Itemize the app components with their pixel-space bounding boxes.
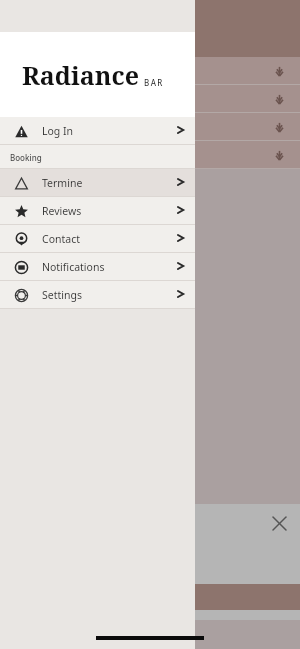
staticText: Contact [42,232,80,246]
button[interactable]: Contact [0,225,195,253]
button[interactable]: Settings [0,281,195,309]
other: Expand section [274,122,285,133]
button[interactable]: Expand section [0,57,300,85]
button[interactable]: Reviews [0,197,195,225]
button[interactable]: Notifications [0,253,195,281]
staticText: Termine [42,176,83,190]
staticText: Booking [10,152,42,163]
button[interactable]: Expand section [0,141,300,169]
staticText: Notifications [42,260,105,274]
staticText: Reviews [42,204,82,218]
staticText: Log In [42,124,74,138]
staticText: BAR [144,77,164,88]
staticText: Radiance [22,58,139,92]
button[interactable]: Log In [0,117,195,145]
other: Expand section [274,150,285,161]
button[interactable]: Expand section [0,113,300,141]
button[interactable]: Accept [12,584,300,610]
staticText: Settings [42,288,82,302]
button[interactable]: Expand section [0,85,300,113]
button[interactable]: Close [266,510,292,536]
button[interactable]: Termine [0,169,195,197]
other: Expand section [274,66,285,77]
other: Expand section [274,94,285,105]
